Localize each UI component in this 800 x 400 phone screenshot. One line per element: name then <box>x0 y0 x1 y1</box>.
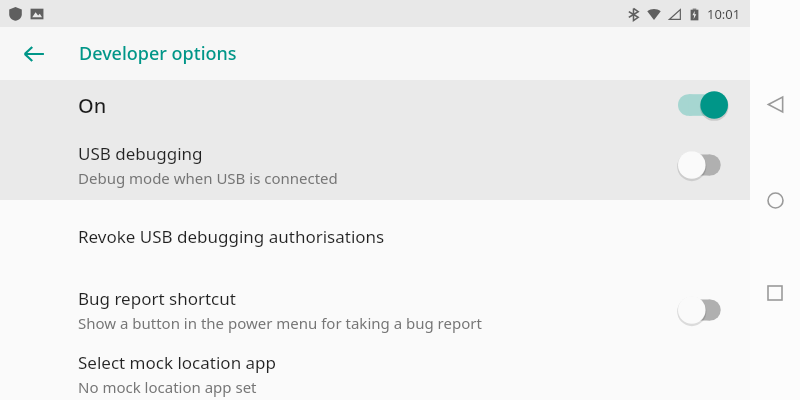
button[interactable]: Revoke USB debugging authorisations <box>0 200 750 272</box>
button[interactable]: Back <box>755 84 795 124</box>
button[interactable]: Recent apps <box>755 273 795 313</box>
staticText: Bug report shortcut <box>78 287 236 310</box>
staticText: Show a button in the power menu for taki… <box>78 313 482 333</box>
button[interactable]: USB debugging <box>0 130 750 200</box>
staticText: No mock location app set <box>78 377 257 397</box>
staticText: USB debugging <box>78 142 203 165</box>
button[interactable]: Home <box>755 180 795 220</box>
staticText: On <box>78 92 107 119</box>
button[interactable] <box>678 90 730 120</box>
staticText: Revoke USB debugging authorisations <box>78 225 385 248</box>
button[interactable]: Back <box>12 32 56 76</box>
button[interactable]: Select mock location app <box>0 348 750 400</box>
button[interactable] <box>676 295 728 325</box>
staticText: Debug mode when USB is connected <box>78 168 338 188</box>
staticText: Developer options <box>79 41 237 66</box>
button[interactable]: On <box>0 80 750 130</box>
button[interactable]: Bug report shortcut <box>0 272 750 348</box>
staticText: Select mock location app <box>78 351 276 374</box>
staticText: 10:01 <box>707 5 741 23</box>
button[interactable] <box>676 150 728 180</box>
